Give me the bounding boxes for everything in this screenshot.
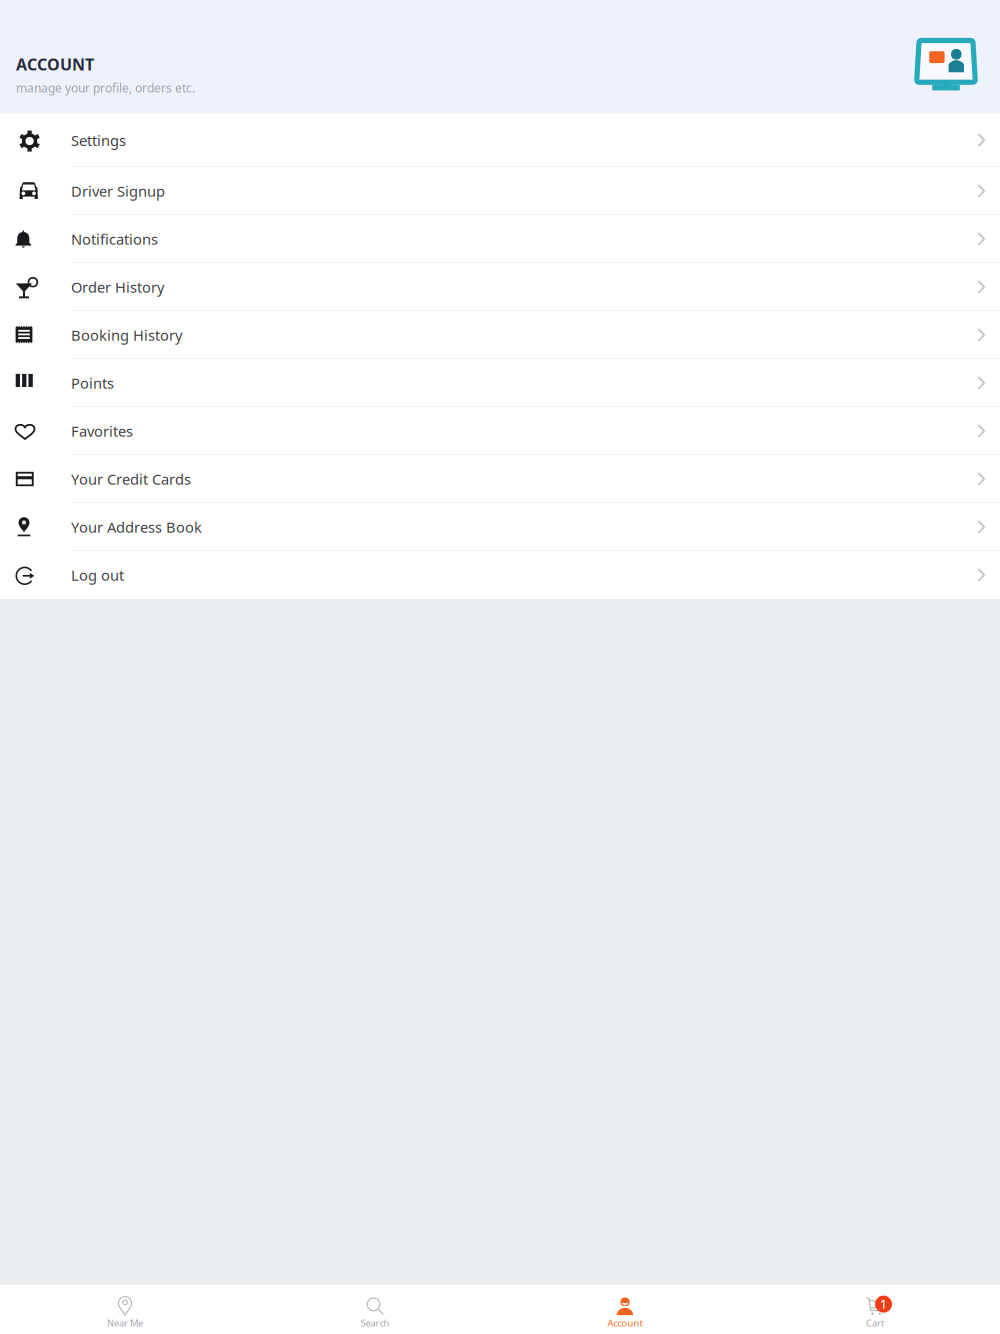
staticText: Near Me (107, 1317, 143, 1329)
staticText: Driver Signup (71, 181, 165, 201)
button[interactable]: Log out (0, 551, 1000, 599)
button[interactable]: Settings (0, 113, 1000, 167)
button[interactable]: Driver Signup (0, 167, 1000, 215)
staticText: 1 (880, 1296, 887, 1312)
staticText: Notifications (71, 229, 158, 249)
button[interactable]: Booking History (0, 311, 1000, 359)
staticText: Your Address Book (71, 517, 202, 537)
button[interactable]: Points (0, 359, 1000, 407)
button[interactable]: Near Me (0, 1285, 250, 1334)
staticText: Order History (71, 277, 164, 297)
staticText: Cart (866, 1317, 884, 1329)
staticText: manage your profile, orders etc. (16, 80, 195, 96)
staticText: Log out (71, 565, 124, 585)
button[interactable]: 1 (750, 1285, 1000, 1334)
staticText: Favorites (71, 421, 133, 441)
staticText: Search (360, 1317, 389, 1329)
button[interactable]: Your Credit Cards (0, 455, 1000, 503)
staticText: Settings (71, 130, 126, 150)
button[interactable]: Account (500, 1285, 750, 1334)
staticText: Booking History (71, 325, 182, 345)
button[interactable]: Notifications (0, 215, 1000, 263)
button[interactable]: Favorites (0, 407, 1000, 455)
staticText: Your Credit Cards (71, 469, 191, 489)
staticText: Account (607, 1317, 642, 1329)
button[interactable]: Search (250, 1285, 500, 1334)
button[interactable]: Order History (0, 263, 1000, 311)
button[interactable]: Your Address Book (0, 503, 1000, 551)
staticText: Points (71, 373, 114, 393)
staticText: ACCOUNT (16, 54, 94, 75)
